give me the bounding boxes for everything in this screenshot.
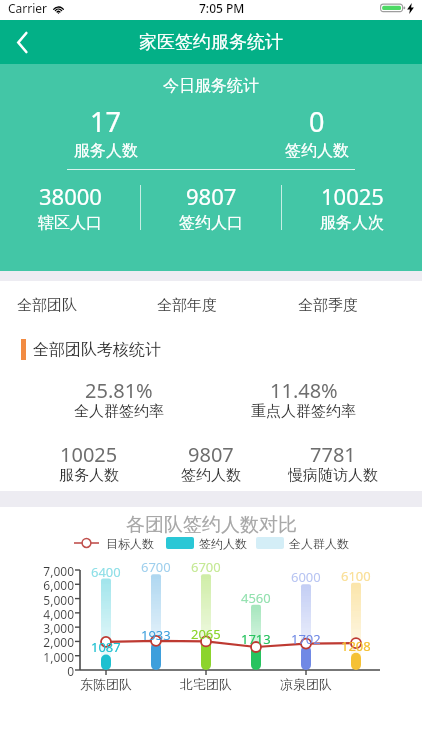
staticText: 10025	[321, 181, 384, 211]
staticText: 辖区人口	[38, 213, 102, 233]
staticText: 服务人数	[74, 141, 138, 161]
button[interactable]: 全部年度	[140, 281, 281, 322]
staticText: 1,000	[43, 649, 74, 665]
staticText: 慢病随访人数	[288, 466, 378, 485]
staticText: 0	[67, 663, 74, 679]
staticText: 全部年度	[157, 296, 217, 315]
button[interactable]: Back	[0, 20, 44, 64]
staticText: 全部团队考核统计	[33, 340, 161, 360]
staticText: 17	[90, 103, 121, 140]
staticText: 9807	[188, 441, 234, 468]
staticText: 1933	[141, 626, 171, 644]
staticText: 6100	[341, 567, 371, 585]
staticText: 11.48%	[270, 377, 338, 404]
staticText: 5,000	[43, 592, 74, 608]
staticText: Carrier	[8, 0, 48, 16]
staticText: 6400	[91, 563, 121, 581]
staticText: 7781	[310, 441, 356, 468]
button[interactable]: 全部团队	[0, 281, 140, 322]
staticText: 2065	[191, 625, 221, 643]
staticText: 9807	[186, 181, 237, 211]
staticText: 签约人口	[179, 213, 243, 233]
staticText: 38000	[39, 181, 102, 211]
staticText: 4,000	[43, 606, 74, 622]
staticText: 今日服务统计	[163, 76, 259, 96]
staticText: 1713	[241, 630, 271, 648]
staticText: 目标人数	[106, 536, 154, 551]
staticText: 家医签约服务统计	[139, 31, 283, 54]
staticText: 1208	[341, 637, 371, 655]
staticText: 签约人数	[285, 141, 349, 161]
staticText: 服务人数	[59, 466, 119, 485]
staticText: 4560	[241, 589, 271, 607]
staticText: 6000	[291, 568, 321, 586]
staticText: 全人群签约率	[74, 402, 164, 421]
staticText: 重点人群签约率	[251, 402, 356, 421]
staticText: 3,000	[43, 620, 74, 636]
staticText: 全人群人数	[289, 536, 349, 551]
staticText: 北宅团队	[180, 676, 232, 692]
staticText: 25.81%	[85, 377, 153, 404]
staticText: 6700	[141, 558, 171, 576]
staticText: 1702	[291, 630, 321, 648]
staticText: 10025	[60, 441, 118, 468]
staticText: 7,000	[43, 563, 74, 579]
staticText: 1087	[91, 638, 121, 656]
staticText: 各团队签约人数对比	[126, 513, 297, 535]
staticText: 6700	[191, 558, 221, 576]
staticText: 全部团队	[17, 296, 77, 315]
staticText: 全部季度	[298, 296, 358, 315]
staticText: 凉泉团队	[280, 676, 332, 692]
button[interactable]: 全部季度	[281, 281, 422, 322]
staticText: 签约人数	[181, 466, 241, 485]
staticText: 签约人数	[199, 536, 247, 551]
staticText: 0	[309, 103, 325, 140]
staticText: 7:05 PM	[199, 0, 245, 16]
staticText: 6,000	[43, 577, 74, 593]
staticText: 服务人次	[320, 213, 384, 233]
staticText: 东陈团队	[80, 676, 132, 692]
staticText: 2,000	[43, 634, 74, 650]
